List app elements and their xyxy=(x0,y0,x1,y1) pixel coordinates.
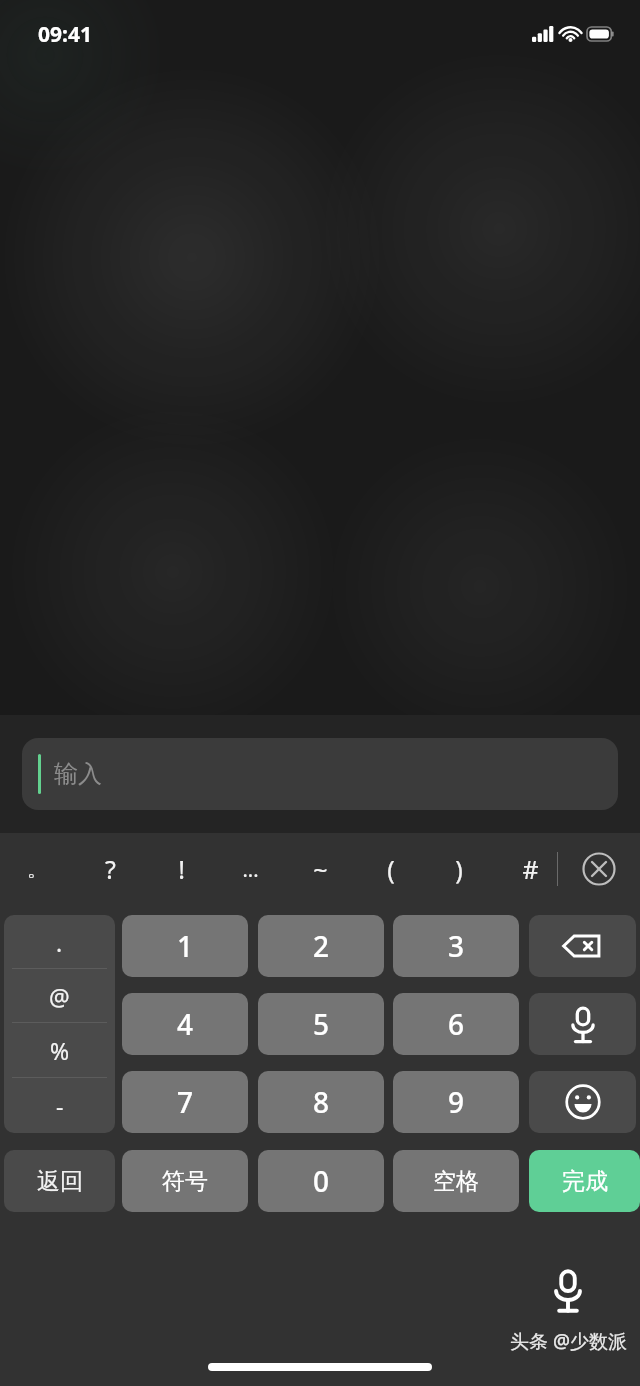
button[interactable]: 空格 xyxy=(393,1150,519,1212)
button[interactable]: . xyxy=(4,915,115,1133)
staticText: 5 xyxy=(313,1005,330,1043)
staticText: 0 xyxy=(313,1162,330,1200)
staticText: ( xyxy=(387,852,395,886)
button[interactable]: 。 xyxy=(2,833,72,905)
staticText: 完成 xyxy=(562,1167,608,1196)
button[interactable]: 4 xyxy=(122,993,248,1055)
staticText: 3 xyxy=(448,927,465,965)
staticText: 头条 @少数派 xyxy=(510,1328,628,1354)
staticText: 符号 xyxy=(162,1167,208,1196)
staticText: 4 xyxy=(177,1005,194,1043)
button[interactable]: Voice input xyxy=(536,1258,600,1322)
button[interactable]: 1 xyxy=(122,915,248,977)
staticText: ~ xyxy=(313,852,328,886)
button[interactable]: 输入 xyxy=(22,738,618,810)
staticText: 8 xyxy=(313,1083,330,1121)
staticText: 。 xyxy=(27,857,47,882)
staticText: 1 xyxy=(177,927,194,965)
button[interactable]: Emoji xyxy=(529,1071,636,1133)
staticText: 输入 xyxy=(54,759,102,789)
button[interactable]: ... xyxy=(215,833,285,905)
button[interactable]: Voice input xyxy=(529,993,636,1055)
staticText: 9 xyxy=(448,1083,465,1121)
button[interactable]: 完成 xyxy=(529,1150,640,1212)
staticText: 空格 xyxy=(433,1167,479,1196)
button[interactable]: 2 xyxy=(258,915,384,977)
staticText: . xyxy=(56,927,63,958)
staticText: 7 xyxy=(177,1083,194,1121)
staticText: # xyxy=(522,852,539,886)
button[interactable]: ( xyxy=(356,833,426,905)
staticText: - xyxy=(56,1090,64,1121)
button[interactable]: ? xyxy=(75,833,145,905)
button[interactable]: Delete xyxy=(529,915,636,977)
button[interactable]: 9 xyxy=(393,1071,519,1133)
staticText: ? xyxy=(105,852,116,886)
staticText: ! xyxy=(178,852,185,886)
staticText: 2 xyxy=(313,927,330,965)
button[interactable]: ) xyxy=(424,833,494,905)
button[interactable]: 返回 xyxy=(4,1150,115,1212)
staticText: 6 xyxy=(448,1005,465,1043)
button[interactable]: 6 xyxy=(393,993,519,1055)
button[interactable]: 7 xyxy=(122,1071,248,1133)
staticText: 返回 xyxy=(37,1167,83,1196)
staticText: @ xyxy=(49,981,70,1012)
button[interactable]: 5 xyxy=(258,993,384,1055)
button[interactable]: Clear text xyxy=(573,843,625,895)
button[interactable]: # xyxy=(495,833,565,905)
staticText: ... xyxy=(242,856,259,883)
button[interactable]: 0 xyxy=(258,1150,384,1212)
button[interactable]: 3 xyxy=(393,915,519,977)
staticText: ) xyxy=(455,852,463,886)
button[interactable]: ~ xyxy=(285,833,355,905)
button[interactable]: ! xyxy=(146,833,216,905)
button[interactable]: 8 xyxy=(258,1071,384,1133)
button[interactable]: 符号 xyxy=(122,1150,248,1212)
staticText: 09:41 xyxy=(38,20,92,49)
staticText: % xyxy=(50,1035,70,1066)
